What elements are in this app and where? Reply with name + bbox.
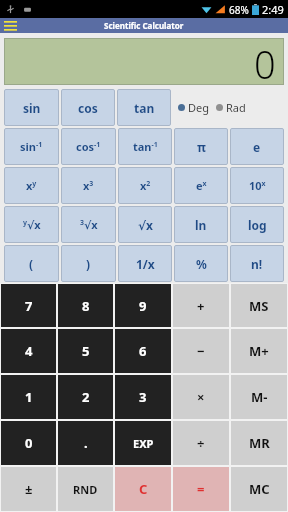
- staticText: 8: [82, 297, 90, 315]
- button[interactable]: Rad: [216, 100, 246, 115]
- staticText: RND: [73, 482, 98, 497]
- button[interactable]: e: [230, 128, 284, 165]
- staticText: ±: [25, 480, 33, 498]
- button[interactable]: =: [173, 467, 229, 511]
- staticText: √x: [138, 217, 153, 233]
- staticText: ×: [197, 388, 205, 406]
- button[interactable]: Menu: [0, 18, 20, 33]
- staticText: =: [197, 480, 205, 498]
- button[interactable]: 4: [1, 329, 56, 373]
- staticText: 9: [139, 297, 147, 315]
- staticText: cos-1: [76, 139, 101, 154]
- button[interactable]: MS: [231, 284, 287, 327]
- staticText: C: [139, 480, 148, 498]
- staticText: +: [197, 297, 205, 315]
- staticText: 0: [25, 434, 33, 452]
- button[interactable]: log: [230, 206, 284, 243]
- staticText: 10x: [249, 178, 266, 193]
- staticText: %: [196, 256, 207, 272]
- button[interactable]: ex: [174, 167, 228, 204]
- button[interactable]: x2: [118, 167, 172, 204]
- button[interactable]: xy: [4, 167, 59, 204]
- button[interactable]: x3: [61, 167, 116, 204]
- staticText: M+: [249, 342, 269, 360]
- staticText: ex: [196, 178, 207, 193]
- staticText: e: [253, 139, 261, 155]
- button[interactable]: C: [115, 467, 171, 511]
- button[interactable]: MC: [231, 467, 287, 511]
- button[interactable]: 7: [1, 284, 56, 327]
- button[interactable]: 9: [115, 284, 171, 327]
- button[interactable]: ): [61, 245, 116, 282]
- staticText: 6: [139, 342, 147, 360]
- button[interactable]: ln: [174, 206, 228, 243]
- staticText: cos: [78, 100, 98, 116]
- button[interactable]: 1: [1, 375, 56, 419]
- button[interactable]: 1/x: [118, 245, 172, 282]
- button[interactable]: sin: [4, 89, 59, 126]
- staticText: 2: [82, 388, 90, 406]
- staticText: x3: [83, 178, 94, 193]
- button[interactable]: π: [174, 128, 228, 165]
- staticText: y√x: [23, 217, 41, 232]
- staticText: EXP: [133, 436, 154, 451]
- button[interactable]: 3: [115, 375, 171, 419]
- button[interactable]: ±: [1, 467, 56, 511]
- button[interactable]: sin-1: [4, 128, 59, 165]
- button[interactable]: EXP: [115, 421, 171, 465]
- staticText: MR: [249, 434, 270, 452]
- button[interactable]: cos: [61, 89, 115, 126]
- staticText: M-: [251, 388, 268, 406]
- staticText: MC: [249, 480, 270, 498]
- button[interactable]: M+: [231, 329, 287, 373]
- staticText: tan-1: [133, 139, 158, 154]
- staticText: xy: [26, 178, 37, 193]
- staticText: 3: [139, 388, 147, 406]
- button[interactable]: 0: [1, 421, 56, 465]
- staticText: sin: [23, 100, 41, 116]
- button[interactable]: 10x: [230, 167, 284, 204]
- button[interactable]: 8: [58, 284, 113, 327]
- button[interactable]: .: [58, 421, 113, 465]
- staticText: Deg: [188, 100, 209, 115]
- staticText: log: [248, 217, 267, 233]
- staticText: 7: [25, 297, 33, 315]
- button[interactable]: cos-1: [61, 128, 116, 165]
- button[interactable]: 6: [115, 329, 171, 373]
- button[interactable]: 5: [58, 329, 113, 373]
- staticText: 0: [254, 38, 276, 85]
- staticText: 3√x: [80, 217, 98, 232]
- staticText: Scientific Calculator: [104, 20, 184, 31]
- staticText: 5: [82, 342, 90, 360]
- staticText: 1: [25, 388, 33, 406]
- button[interactable]: M-: [231, 375, 287, 419]
- button[interactable]: Deg: [178, 100, 209, 115]
- button[interactable]: ÷: [173, 421, 229, 465]
- button[interactable]: RND: [58, 467, 113, 511]
- staticText: .: [84, 434, 88, 452]
- staticText: −: [197, 342, 205, 360]
- button[interactable]: MR: [231, 421, 287, 465]
- staticText: 68%: [229, 3, 249, 17]
- staticText: ÷: [197, 434, 205, 452]
- button[interactable]: ×: [173, 375, 229, 419]
- button[interactable]: 2: [58, 375, 113, 419]
- staticText: x2: [140, 178, 151, 193]
- staticText: Rad: [226, 100, 246, 115]
- staticText: (: [29, 256, 34, 272]
- button[interactable]: (: [4, 245, 59, 282]
- button[interactable]: −: [173, 329, 229, 373]
- staticText: ): [86, 256, 91, 272]
- staticText: tan: [134, 100, 155, 116]
- button[interactable]: tan: [117, 89, 171, 126]
- button[interactable]: tan-1: [118, 128, 172, 165]
- button[interactable]: %: [174, 245, 228, 282]
- button[interactable]: n!: [230, 245, 284, 282]
- staticText: 1/x: [136, 256, 155, 272]
- button[interactable]: 3√x: [61, 206, 116, 243]
- staticText: sin-1: [20, 139, 43, 154]
- button[interactable]: +: [173, 284, 229, 327]
- button[interactable]: √x: [118, 206, 172, 243]
- button[interactable]: y√x: [4, 206, 59, 243]
- staticText: π: [197, 139, 206, 155]
